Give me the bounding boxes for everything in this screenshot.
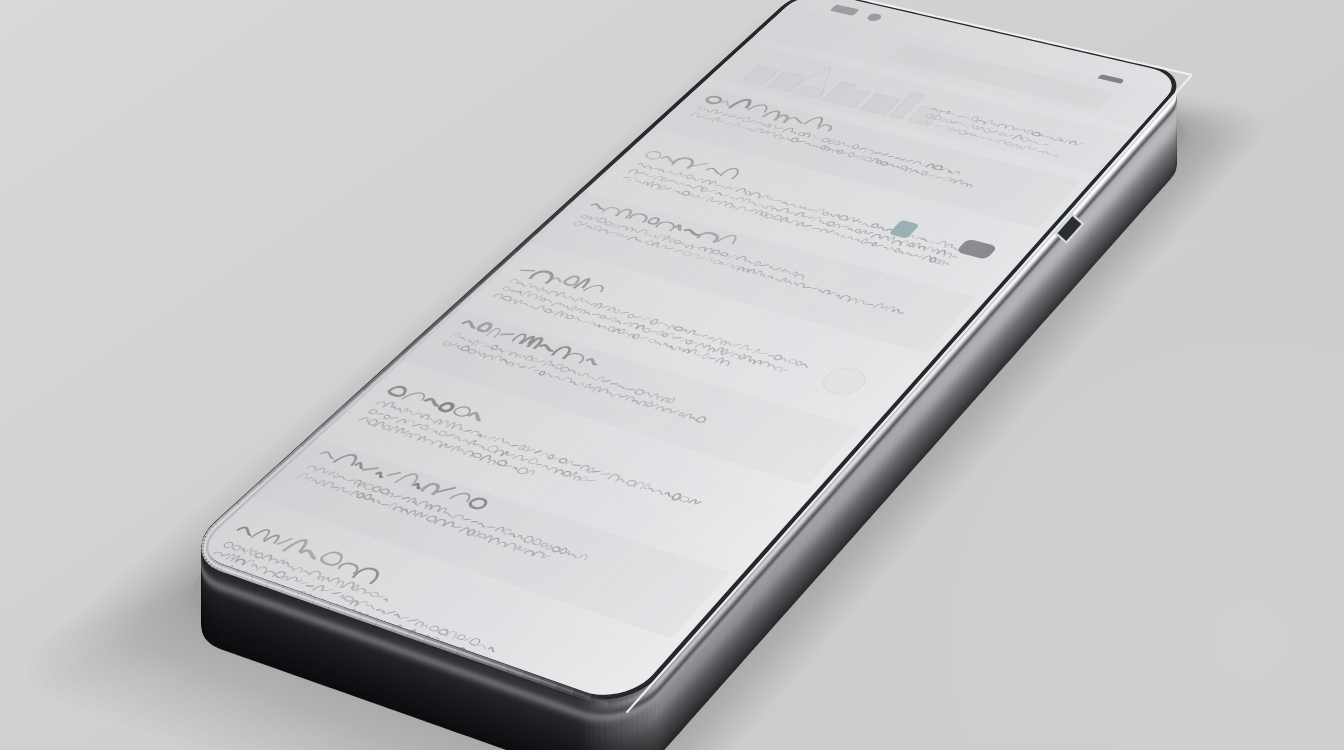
button[interactable]: List item 7 [241, 436, 741, 651]
button[interactable]: List item 4 [463, 254, 923, 423]
button[interactable]: List item 5 [391, 308, 870, 497]
button[interactable]: App bar [754, 6, 1168, 128]
button[interactable]: List item 1 [646, 85, 1090, 237]
button[interactable]: Power button [1064, 213, 1100, 259]
button[interactable]: More options [962, 231, 1004, 252]
button[interactable]: List item 3 [521, 191, 986, 364]
button[interactable]: List item 8 [167, 511, 667, 728]
button[interactable]: List item 2 [591, 140, 1037, 293]
button[interactable]: List item 6 [322, 374, 804, 568]
